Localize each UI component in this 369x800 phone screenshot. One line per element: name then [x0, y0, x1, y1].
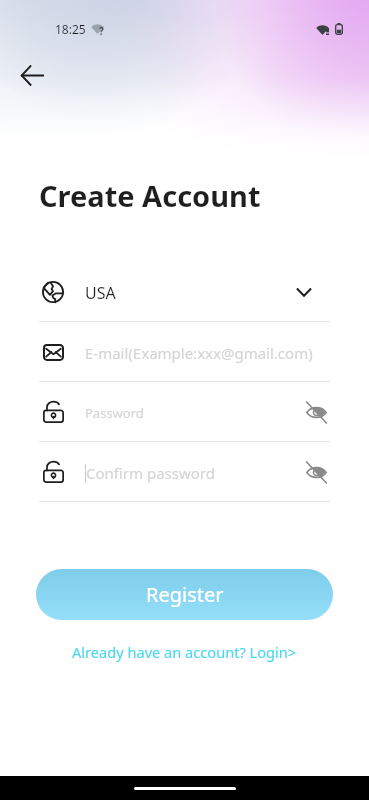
staticText: Create Account: [39, 176, 261, 215]
button[interactable]: Toggle password visibility: [303, 457, 329, 487]
staticText: Password: [85, 404, 144, 422]
staticText: Already have an account? Login>: [72, 642, 297, 662]
button[interactable]: Confirm password: [42, 442, 330, 501]
button[interactable]: USA: [42, 262, 330, 321]
staticText: E-mail(Example:xxx@gmail.com): [85, 343, 313, 363]
staticText: Confirm password: [86, 463, 215, 483]
button[interactable]: Select country: [285, 277, 323, 307]
button[interactable]: Already have an account? Login>: [0, 642, 369, 662]
button[interactable]: E-mail(Example:xxx@gmail.com): [42, 322, 330, 381]
button[interactable]: Back: [10, 53, 54, 97]
button[interactable]: Password: [42, 382, 330, 441]
staticText: USA: [85, 282, 116, 304]
staticText: ?: [99, 24, 104, 38]
staticText: 18:25: [55, 21, 86, 37]
button[interactable]: Register: [36, 569, 333, 620]
staticText: Register: [146, 581, 224, 608]
button[interactable]: Toggle password visibility: [303, 397, 329, 427]
